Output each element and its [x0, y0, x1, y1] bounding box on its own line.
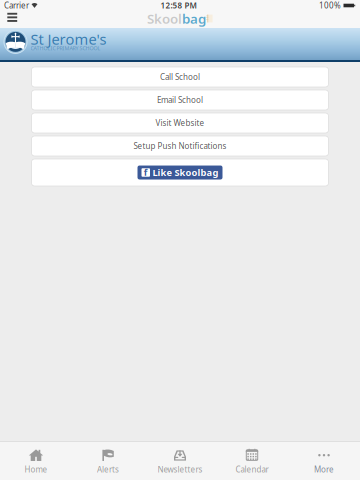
staticText: Skool [147, 10, 182, 27]
button[interactable]: More [288, 442, 360, 480]
button[interactable]: Visit Website [31, 113, 328, 133]
staticText: Like Skoolbag [152, 166, 218, 179]
staticText: Setup Push Notifications [133, 141, 226, 151]
staticText: CATHOLIC PRIMARY SCHOOL [30, 45, 100, 52]
button[interactable]: f [31, 159, 328, 186]
button[interactable]: Email School [31, 90, 328, 110]
staticText: Email School [157, 95, 203, 105]
staticText: Carrier [4, 0, 29, 11]
staticText: Home [24, 464, 47, 475]
button[interactable]: Menu [3, 11, 25, 28]
staticText: 100% [319, 0, 341, 11]
staticText: 12:58 PM [160, 0, 196, 11]
staticText: Calendar [235, 464, 268, 475]
button[interactable]: Call School [31, 67, 328, 87]
staticText: bag [182, 10, 206, 27]
staticText: f [144, 166, 148, 178]
staticText: More [314, 464, 334, 475]
staticText: St Jerome's [30, 29, 106, 49]
button[interactable]: Calendar [216, 442, 288, 480]
staticText: Alerts [97, 464, 119, 475]
button[interactable]: Home [0, 442, 72, 480]
staticText: Call School [160, 72, 200, 82]
button[interactable]: Alerts [72, 442, 144, 480]
staticText: Newsletters [157, 464, 202, 475]
staticText: Visit Website [155, 118, 204, 128]
button[interactable]: Setup Push Notifications [31, 136, 328, 156]
button[interactable]: Newsletters [144, 442, 216, 480]
